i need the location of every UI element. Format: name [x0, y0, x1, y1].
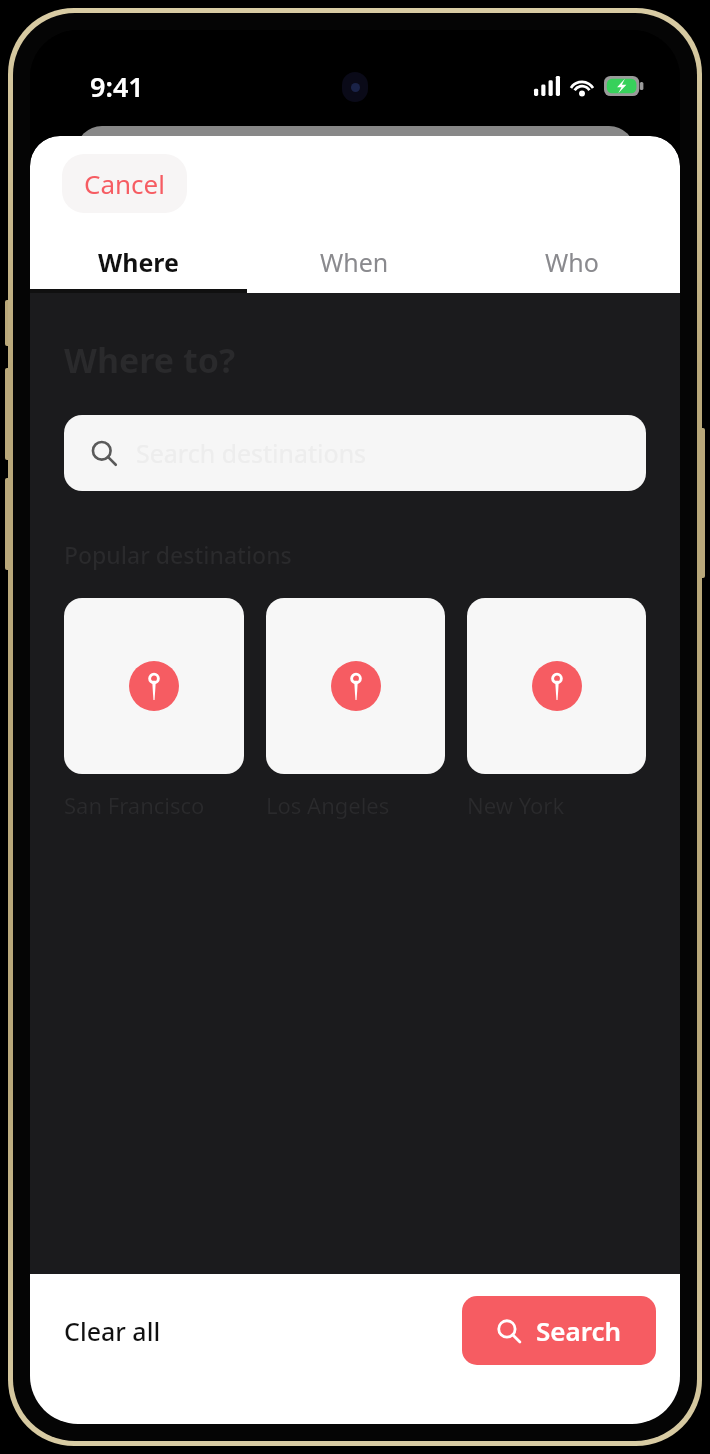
- button[interactable]: New York: [467, 598, 646, 820]
- staticText: Clear all: [64, 1314, 161, 1348]
- staticText: When: [320, 245, 389, 279]
- staticText: New York: [467, 790, 565, 820]
- staticText: Search destinations: [136, 436, 367, 470]
- staticText: Popular destinations: [64, 539, 292, 570]
- button[interactable]: Los Angeles: [266, 598, 445, 820]
- button[interactable]: Who: [463, 235, 680, 289]
- button[interactable]: Search: [462, 1296, 656, 1365]
- button[interactable]: When: [246, 235, 463, 289]
- button[interactable]: Search destinations: [64, 415, 646, 491]
- button[interactable]: San Francisco: [64, 598, 244, 820]
- staticText: Who: [545, 245, 599, 279]
- button[interactable]: Where: [30, 235, 246, 289]
- button[interactable]: Clear all: [54, 1296, 171, 1366]
- staticText: Search: [536, 1313, 622, 1348]
- staticText: San Francisco: [64, 790, 205, 820]
- button[interactable]: Cancel: [62, 154, 187, 213]
- staticText: Where to?: [64, 337, 236, 383]
- staticText: Cancel: [84, 166, 165, 201]
- staticText: Where: [98, 245, 179, 279]
- staticText: Los Angeles: [266, 790, 390, 820]
- staticText: 9:41: [90, 68, 144, 105]
